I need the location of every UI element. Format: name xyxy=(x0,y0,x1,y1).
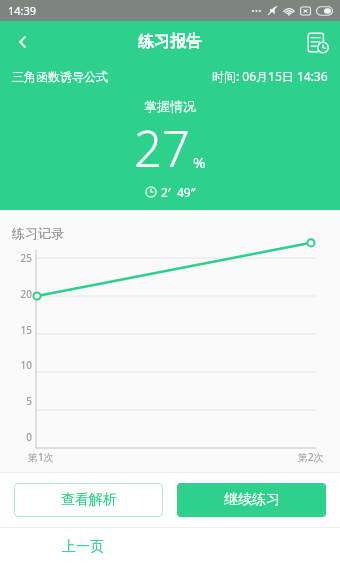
staticText: 20 xyxy=(20,287,32,301)
staticText: 练习报告 xyxy=(138,32,202,52)
button[interactable]: History xyxy=(294,21,340,63)
staticText: 练习记录 xyxy=(12,225,64,241)
staticText: 10 xyxy=(20,358,32,372)
staticText: 0 xyxy=(26,430,32,444)
staticText: 27 xyxy=(134,115,190,182)
staticText: 5 xyxy=(26,394,32,408)
staticText: 15 xyxy=(20,323,32,337)
staticText: 三角函数诱导公式 xyxy=(12,69,108,84)
staticText: 第2次 xyxy=(298,450,324,464)
staticText: 查看解析 xyxy=(61,491,117,509)
staticText: 第1次 xyxy=(28,450,54,464)
button[interactable]: Back xyxy=(0,21,46,63)
staticText: % xyxy=(193,152,206,172)
button[interactable]: 查看解析 xyxy=(14,483,163,517)
staticText: 继续练习 xyxy=(224,491,280,509)
button[interactable]: 继续练习 xyxy=(177,483,326,517)
button[interactable]: 上一页 xyxy=(56,532,110,562)
staticText: 14:39 xyxy=(8,3,37,18)
staticText: 上一页 xyxy=(62,538,104,556)
staticText: 2′ 49″ xyxy=(161,184,196,200)
staticText: 时间: 06月15日 14:36 xyxy=(212,68,328,84)
staticText: 25 xyxy=(20,251,32,265)
staticText: 掌握情况 xyxy=(144,98,196,114)
